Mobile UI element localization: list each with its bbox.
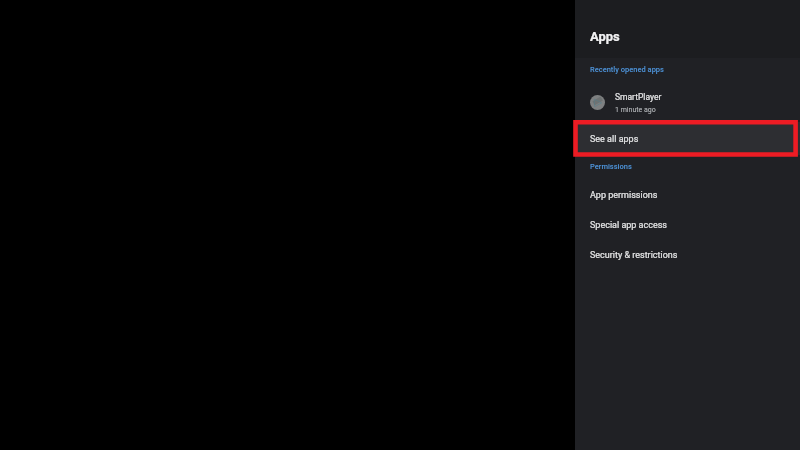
staticText: See all apps — [590, 134, 639, 145]
button[interactable]: See all apps — [575, 122, 800, 155]
button[interactable]: SmartPlayer app icon — [575, 86, 800, 119]
staticText: Special app access — [590, 220, 668, 231]
staticText: Security & restrictions — [590, 250, 678, 261]
staticText: Permissions — [590, 162, 632, 171]
other: SmartPlayer app icon — [590, 95, 605, 110]
button[interactable]: App permissions — [575, 185, 800, 211]
staticText: Recently opened apps — [590, 65, 664, 74]
staticText: App permissions — [590, 190, 658, 201]
staticText: 1 minute ago — [615, 106, 656, 114]
button[interactable]: Special app access — [575, 215, 800, 241]
button[interactable]: Security & restrictions — [575, 245, 800, 271]
staticText: SmartPlayer — [615, 92, 662, 102]
staticText: Apps — [590, 29, 620, 44]
